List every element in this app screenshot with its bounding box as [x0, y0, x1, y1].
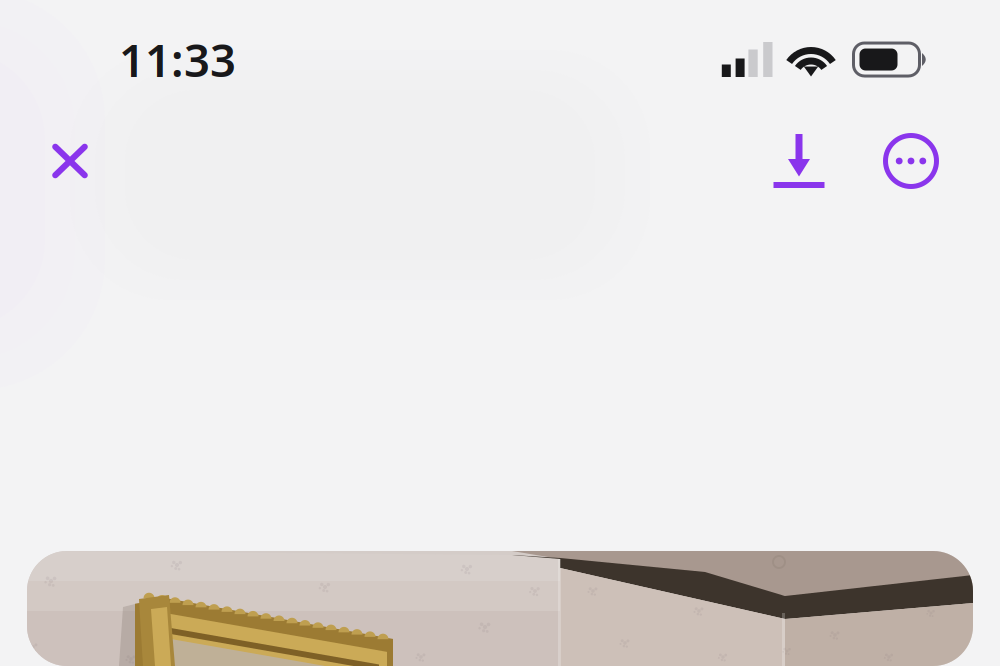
staticText: 11:33 — [119, 29, 236, 90]
button[interactable]: More options — [879, 129, 943, 193]
button[interactable]: Download — [767, 129, 831, 193]
button[interactable]: Close — [38, 129, 102, 193]
